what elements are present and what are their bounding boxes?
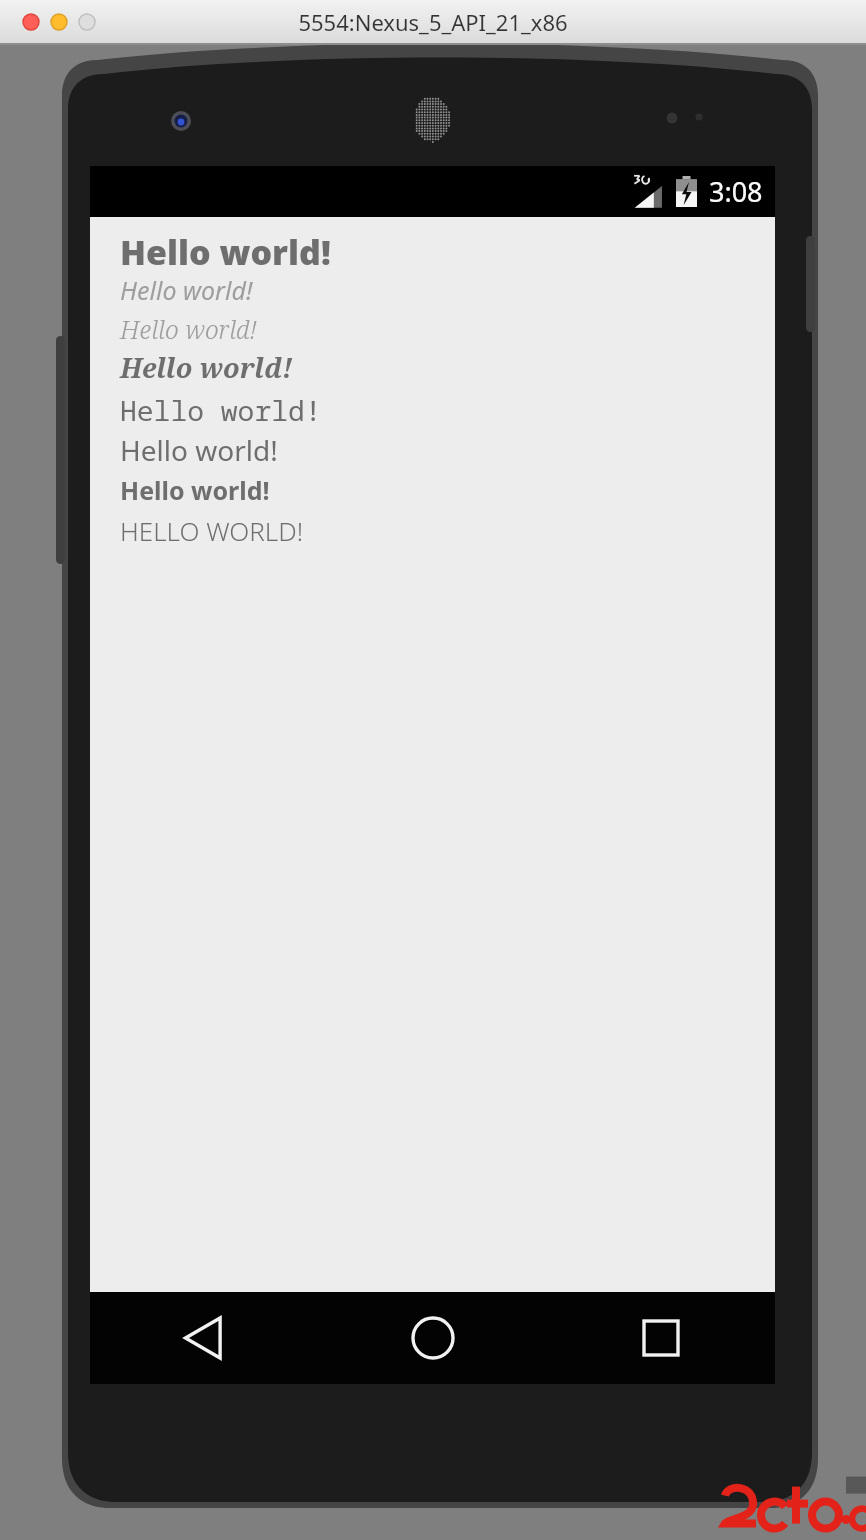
button[interactable]: HELLO WORLD!: [120, 513, 304, 548]
staticText: 3:08: [709, 173, 763, 210]
button[interactable]: Hello world!: [120, 391, 322, 429]
staticText: Hello world!: [120, 273, 253, 307]
staticText: 5554:Nexus_5_API_21_x86: [298, 7, 568, 37]
button[interactable]: Hello world!: [120, 473, 270, 507]
button[interactable]: Recent apps: [547, 1292, 775, 1384]
staticText: Hello world!: [120, 391, 322, 429]
staticText: Hello world!: [120, 431, 278, 469]
button[interactable]: Hello world!: [120, 431, 278, 469]
button[interactable]: Home: [319, 1292, 547, 1384]
button[interactable]: Zoom window: [78, 13, 96, 31]
button[interactable]: Minimise window: [50, 13, 68, 31]
button[interactable]: Back: [90, 1292, 319, 1384]
button[interactable]: Hello world!: [120, 229, 331, 275]
staticText: Hello world!: [120, 312, 257, 346]
staticText: HELLO WORLD!: [120, 513, 304, 548]
button[interactable]: Hello world!: [120, 349, 293, 386]
staticText: Hello world!: [120, 349, 293, 386]
button[interactable]: Hello world!: [120, 273, 253, 307]
staticText: Hello world!: [120, 229, 331, 275]
button[interactable]: Close window: [22, 13, 40, 31]
button[interactable]: Hello world!: [120, 312, 257, 346]
staticText: Hello world!: [120, 473, 270, 507]
